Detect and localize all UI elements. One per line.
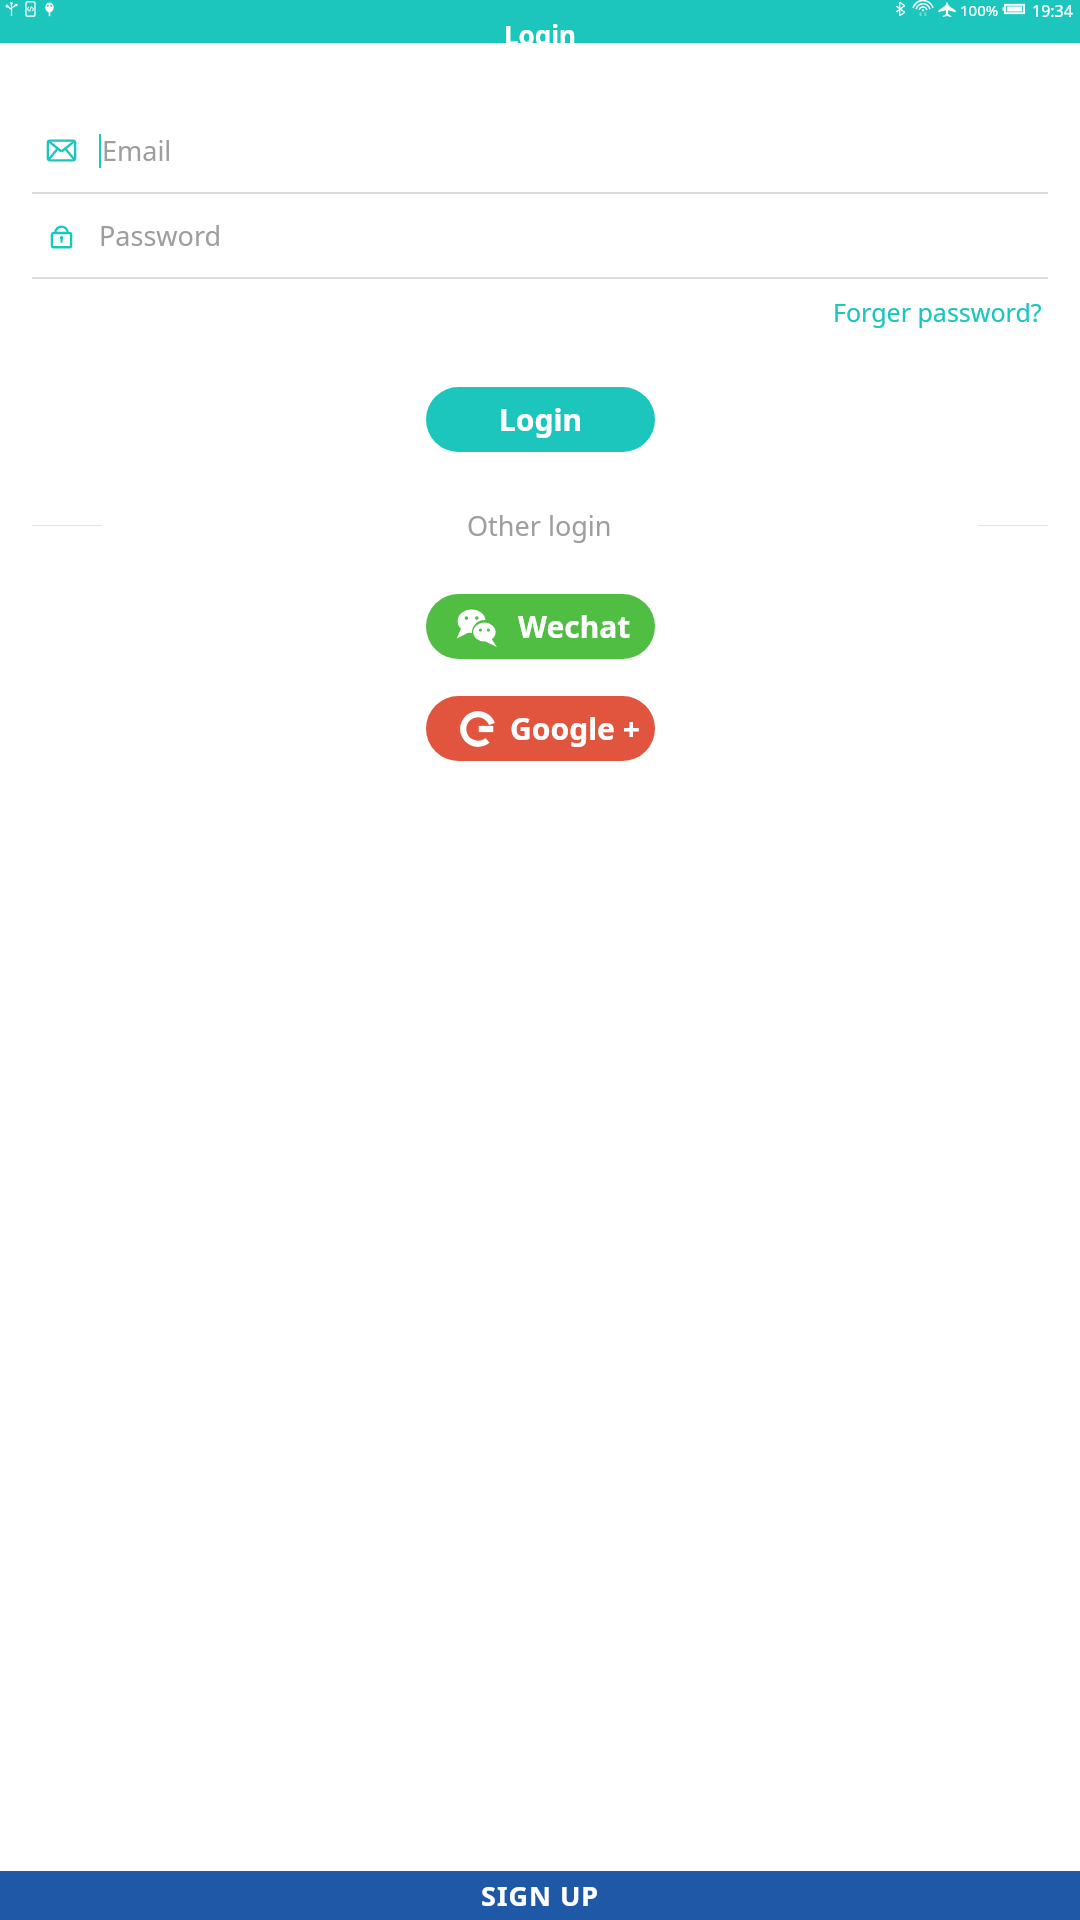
button[interactable]: Login bbox=[426, 387, 655, 452]
staticText: Email bbox=[102, 132, 172, 169]
staticText: 100% bbox=[960, 0, 999, 17]
staticText: Forger password? bbox=[833, 295, 1042, 329]
staticText: Google + bbox=[510, 708, 640, 749]
staticText: SIGN UP bbox=[481, 1877, 600, 1914]
staticText: Wechat bbox=[518, 606, 631, 647]
staticText: 19:34 bbox=[1032, 0, 1073, 17]
staticText: Login bbox=[499, 399, 582, 440]
button[interactable]: Password bbox=[32, 194, 1048, 277]
staticText: Login bbox=[504, 17, 576, 43]
button[interactable]: Email bbox=[32, 109, 1048, 192]
button[interactable]: Wechat bbox=[426, 594, 655, 659]
staticText: Password bbox=[99, 217, 222, 254]
staticText: Other login bbox=[467, 507, 612, 544]
button[interactable]: Forger password? bbox=[827, 289, 1048, 335]
button[interactable]: Google + bbox=[426, 696, 655, 761]
button[interactable]: SIGN UP bbox=[0, 1871, 1080, 1920]
